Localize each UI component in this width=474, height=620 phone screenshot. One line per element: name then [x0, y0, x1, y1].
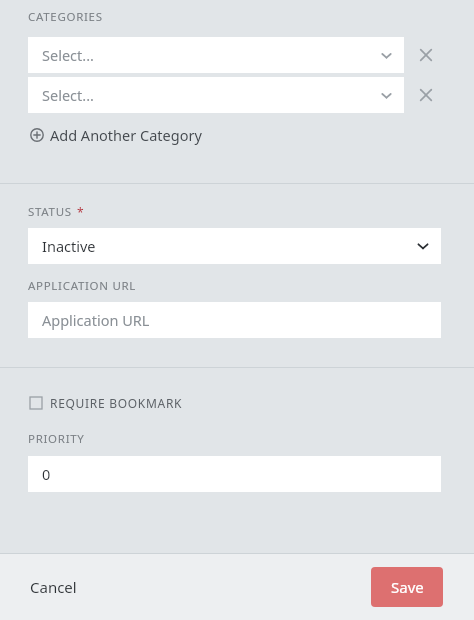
button[interactable]: Cancel — [20, 569, 87, 605]
button[interactable]: REQUIRE BOOKMARK — [28, 392, 185, 414]
staticText: Add Another Category — [50, 125, 202, 145]
staticText: Inactive — [42, 236, 96, 256]
button[interactable]: Select... — [28, 77, 404, 113]
staticText: Save — [391, 577, 424, 597]
staticText: PRIORITY — [28, 431, 85, 447]
staticText: Select... — [42, 45, 94, 65]
button[interactable]: Add Another Category — [28, 121, 204, 149]
staticText: 0 — [42, 464, 51, 484]
staticText: APPLICATION URL — [28, 278, 137, 294]
staticText: Select... — [42, 85, 94, 105]
button[interactable]: Remove category — [412, 81, 440, 109]
button[interactable]: Application URL — [28, 302, 441, 338]
staticText: Cancel — [30, 577, 77, 597]
button[interactable]: Remove category — [412, 41, 440, 69]
button[interactable]: Save — [371, 567, 443, 607]
button[interactable]: Inactive — [28, 228, 441, 264]
staticText: STATUS — [28, 204, 72, 220]
staticText: REQUIRE BOOKMARK — [50, 395, 183, 411]
staticText: CATEGORIES — [28, 9, 103, 25]
button[interactable]: 0 — [28, 456, 441, 492]
staticText: Application URL — [42, 310, 150, 330]
staticText: * — [77, 204, 84, 220]
button[interactable]: Select... — [28, 37, 404, 73]
